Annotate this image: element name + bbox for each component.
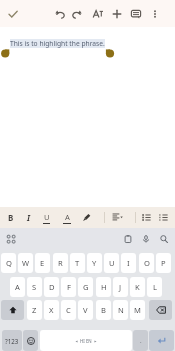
button[interactable]: Highlight — [78, 209, 95, 226]
staticText: B — [8, 212, 14, 223]
button[interactable]: Numbered list — [155, 209, 172, 226]
button[interactable] — [1, 300, 24, 320]
button[interactable]: Done — [4, 5, 21, 22]
staticText: G — [83, 282, 89, 292]
button[interactable]: E — [35, 253, 50, 273]
button[interactable]: Voice input — [138, 231, 153, 246]
button[interactable]: K — [130, 277, 145, 297]
button[interactable] — [149, 330, 174, 351]
button[interactable]: Text color — [58, 209, 75, 226]
button[interactable]: O — [139, 253, 154, 273]
staticText: S — [32, 282, 37, 292]
button[interactable]: T — [70, 253, 85, 273]
staticText: X — [49, 305, 54, 315]
button[interactable]: D — [44, 277, 59, 297]
staticText: J — [119, 282, 122, 292]
button[interactable]: Note — [127, 5, 144, 22]
staticText: F — [67, 282, 71, 292]
button[interactable]: N — [113, 300, 128, 320]
button[interactable]: Redo — [68, 5, 85, 22]
button[interactable]: F — [61, 277, 76, 297]
staticText: C — [66, 305, 71, 315]
staticText: T — [75, 258, 80, 268]
button[interactable]: H — [96, 277, 111, 297]
button[interactable] — [149, 300, 172, 320]
staticText: R — [58, 258, 63, 268]
staticText: H — [101, 282, 107, 292]
staticText: D — [49, 282, 55, 292]
staticText: Y — [92, 258, 97, 268]
button[interactable]: I — [121, 253, 136, 273]
staticText: V — [83, 305, 88, 315]
button[interactable]: Bulleted list — [138, 209, 155, 226]
button[interactable]: Text format — [89, 5, 106, 22]
staticText: A — [15, 282, 20, 292]
button[interactable]: U — [104, 253, 119, 273]
staticText: I — [27, 212, 31, 223]
staticText: N — [118, 305, 124, 315]
button[interactable]: Italic — [20, 209, 37, 226]
button[interactable]: Insert — [108, 5, 125, 22]
button[interactable]: R — [53, 253, 68, 273]
button[interactable]: B — [96, 300, 111, 320]
button[interactable]: Z — [27, 300, 42, 320]
button[interactable]: Search — [156, 231, 171, 246]
staticText: P — [161, 258, 166, 268]
button[interactable]: L — [147, 277, 162, 297]
staticText: A — [65, 212, 70, 222]
button[interactable]: Y — [87, 253, 102, 273]
button[interactable]: Bold — [2, 209, 19, 226]
staticText: This is to highlight the phrase. — [10, 39, 105, 48]
staticText: Q — [6, 258, 12, 268]
button[interactable]: HI EN — [40, 330, 132, 351]
button[interactable]: Undo — [51, 5, 68, 22]
staticText: I — [127, 258, 130, 268]
staticText: M — [134, 305, 141, 315]
button[interactable]: Keyboard layout — [3, 231, 18, 246]
button[interactable]: Clipboard — [120, 231, 135, 246]
button[interactable]: G — [78, 277, 93, 297]
button[interactable]: J — [113, 277, 128, 297]
button[interactable]: W — [18, 253, 33, 273]
staticText: U — [109, 258, 115, 268]
staticText: Z — [32, 305, 37, 315]
button[interactable] — [23, 330, 38, 351]
button[interactable]: ?123 — [2, 330, 22, 351]
button[interactable]: P — [156, 253, 171, 273]
staticText: W — [22, 258, 30, 268]
staticText: . — [140, 337, 142, 345]
staticText: HI EN — [80, 338, 92, 344]
button[interactable]: More options — [146, 5, 163, 22]
button[interactable]: A — [10, 277, 25, 297]
staticText: E — [40, 258, 45, 268]
staticText: K — [135, 282, 140, 292]
button[interactable]: S — [27, 277, 42, 297]
staticText: ?123 — [5, 337, 19, 345]
button[interactable]: M — [130, 300, 145, 320]
button[interactable]: Alignment — [109, 209, 126, 226]
staticText: L — [153, 282, 157, 292]
button[interactable]: . — [133, 330, 148, 351]
staticText: O — [144, 258, 150, 268]
button[interactable]: Underline — [38, 209, 55, 226]
button[interactable]: Q — [1, 253, 16, 273]
button[interactable]: V — [78, 300, 93, 320]
button[interactable]: X — [44, 300, 59, 320]
staticText: U — [44, 212, 50, 222]
staticText: B — [101, 305, 106, 315]
button[interactable]: C — [61, 300, 76, 320]
